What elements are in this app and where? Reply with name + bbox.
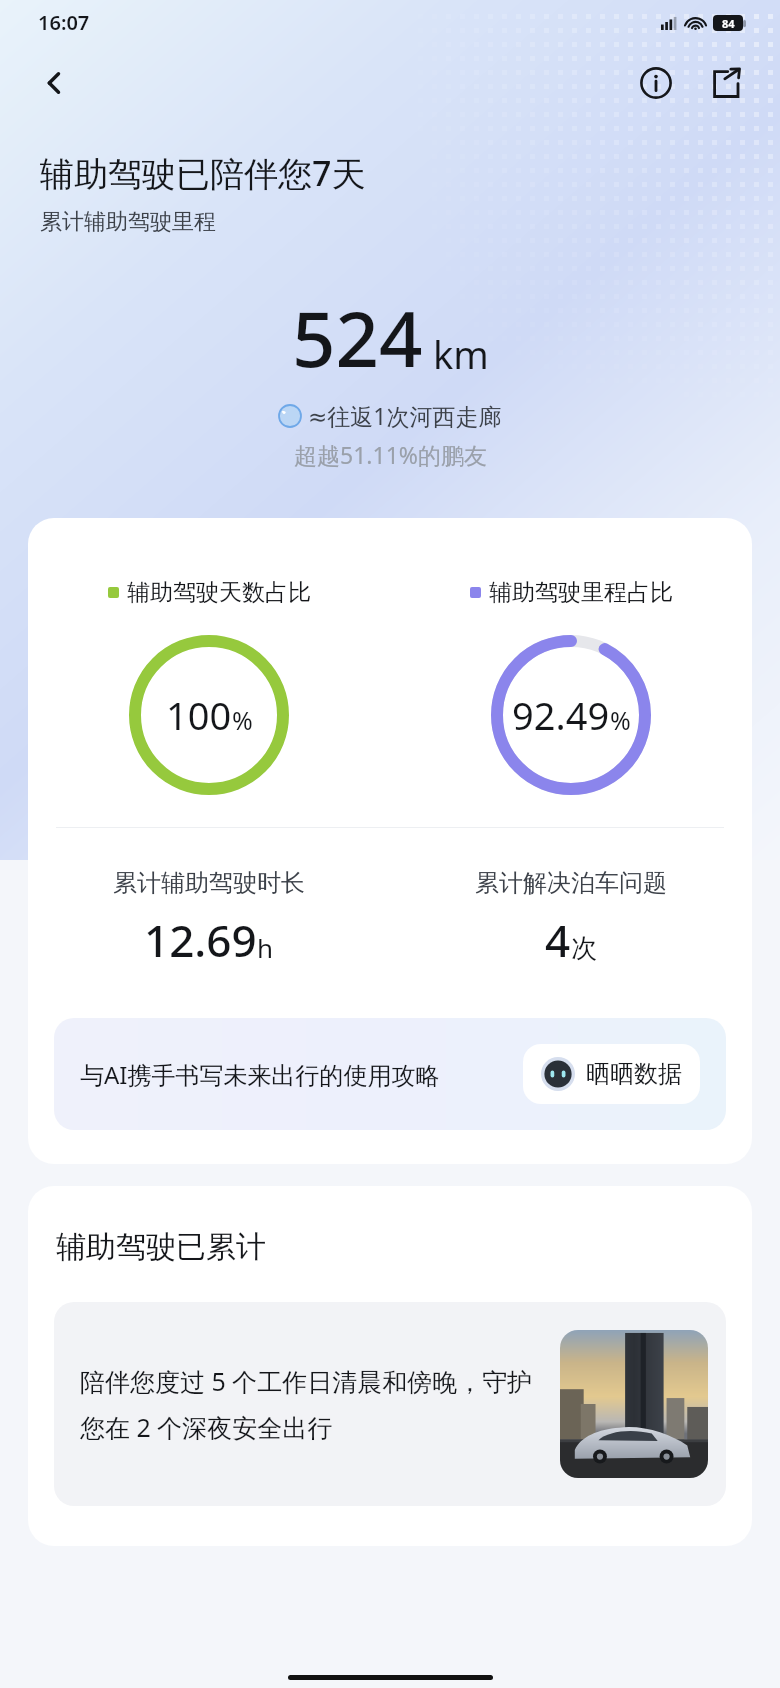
staticText: 累计辅助驾驶时长: [113, 868, 305, 898]
button[interactable]: Info: [630, 57, 682, 109]
button[interactable]: 陪伴您度过 5 个工作日清晨和傍晚，守护您在 2 个深夜安全出行: [54, 1302, 726, 1506]
staticText: %: [232, 703, 253, 737]
staticText: ≈往返1次河西走廊: [308, 400, 502, 431]
staticText: h: [257, 930, 274, 965]
staticText: 累计辅助驾驶里程: [40, 208, 216, 236]
staticText: 次: [571, 932, 597, 965]
button[interactable]: Back: [30, 58, 80, 108]
staticText: %: [610, 703, 631, 737]
button[interactable]: 与AI携手书写未来出行的使用攻略: [54, 1018, 726, 1130]
staticText: km: [433, 328, 489, 380]
staticText: 辅助驾驶已陪伴您7天: [40, 150, 366, 196]
staticText: 12.69: [144, 910, 257, 970]
button[interactable]: 晒晒数据: [523, 1044, 700, 1104]
button[interactable]: Share: [700, 57, 752, 109]
staticText: 辅助驾驶里程占比: [489, 578, 673, 607]
staticText: 与AI携手书写未来出行的使用攻略: [80, 1058, 509, 1091]
staticText: 524: [292, 286, 423, 390]
staticText: 累计解决泊车问题: [475, 868, 667, 898]
staticText: 辅助驾驶天数占比: [127, 578, 311, 607]
staticText: 晒晒数据: [586, 1059, 682, 1089]
staticText: 16:07: [38, 9, 90, 36]
staticText: 4: [545, 910, 571, 970]
staticText: 84: [722, 16, 735, 31]
staticText: 92.49: [512, 689, 610, 741]
staticText: 100: [166, 689, 232, 741]
staticText: 辅助驾驶已累计: [56, 1228, 266, 1266]
staticText: 超越51.11%的鹏友: [294, 439, 487, 470]
staticText: 陪伴您度过 5 个工作日清晨和傍晚，守护您在 2 个深夜安全出行: [80, 1364, 544, 1444]
